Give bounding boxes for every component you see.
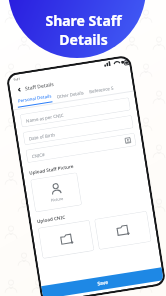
- button[interactable]: Date of Birth: [23, 115, 133, 145]
- staticText: CNIC#: [31, 151, 46, 159]
- staticText: Upload CNIC: [36, 214, 66, 224]
- staticText: Details: [59, 30, 108, 49]
- staticText: Name as per CNIC: [26, 112, 64, 124]
- button[interactable]: Upload CNIC back: [94, 211, 151, 250]
- staticText: 9:41: [13, 76, 21, 82]
- staticText: Staff Details: [24, 81, 54, 92]
- button[interactable]: Other Details: [56, 89, 85, 99]
- button[interactable]: Name as per CNIC: [20, 97, 131, 127]
- staticText: Save: [97, 279, 109, 287]
- button[interactable]: Upload CNIC front: [38, 220, 94, 259]
- staticText: Picture: [50, 196, 64, 203]
- button[interactable]: Back: [14, 85, 24, 94]
- button[interactable]: CNIC#: [26, 133, 136, 163]
- staticText: Share Staff: [45, 11, 122, 30]
- staticText: Date of Birth: [28, 131, 56, 141]
- staticText: Upload Staff Picture: [29, 163, 74, 176]
- staticText: Personal Details: [17, 92, 52, 104]
- button[interactable]: Save: [41, 267, 164, 296]
- button[interactable]: Personal Details: [16, 92, 52, 108]
- button[interactable]: Reference S: [89, 84, 114, 94]
- button[interactable]: Upload staff picture: [30, 172, 82, 212]
